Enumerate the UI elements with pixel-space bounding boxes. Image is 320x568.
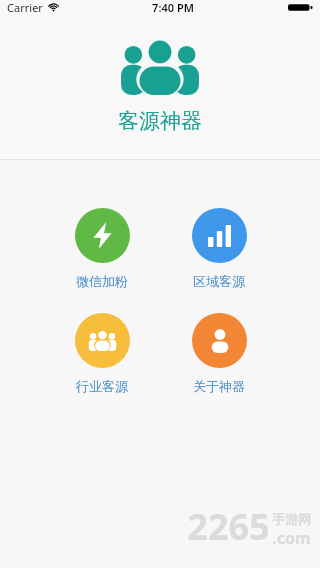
staticText: 微信加粉 bbox=[76, 273, 128, 289]
button[interactable]: 区域客源 bbox=[169, 208, 269, 289]
button[interactable]: 行业客源 bbox=[52, 313, 152, 394]
staticText: 行业客源 bbox=[76, 378, 128, 394]
staticText: 2265 bbox=[187, 502, 270, 551]
staticText: Carrier bbox=[7, 0, 43, 15]
button[interactable]: 微信加粉 bbox=[52, 208, 152, 289]
staticText: 关于神器 bbox=[193, 378, 245, 394]
button[interactable]: 关于神器 bbox=[169, 313, 269, 394]
staticText: 手游网 bbox=[272, 511, 311, 527]
staticText: 客源神器 bbox=[118, 108, 202, 134]
staticText: .com bbox=[272, 527, 311, 549]
staticText: 7:40 PM bbox=[152, 0, 194, 15]
staticText: 区域客源 bbox=[193, 273, 245, 289]
